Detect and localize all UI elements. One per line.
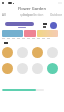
staticText: All (2, 13, 6, 17)
button[interactable] (47, 47, 58, 58)
button[interactable] (5, 22, 34, 26)
button[interactable] (24, 30, 36, 37)
button[interactable]: Profile (50, 22, 57, 29)
button[interactable] (17, 47, 28, 58)
staticText: Flower Garden (18, 6, 46, 11)
staticText: Outdoor (50, 13, 62, 17)
button[interactable] (2, 63, 13, 74)
button[interactable] (32, 47, 43, 58)
button[interactable] (2, 30, 23, 37)
staticText: spring collection (20, 13, 44, 17)
button[interactable] (2, 47, 13, 58)
button[interactable] (32, 63, 43, 74)
button[interactable] (47, 63, 58, 74)
button[interactable] (37, 30, 58, 37)
staticText: Indoor (23, 13, 33, 17)
button[interactable] (17, 63, 28, 74)
